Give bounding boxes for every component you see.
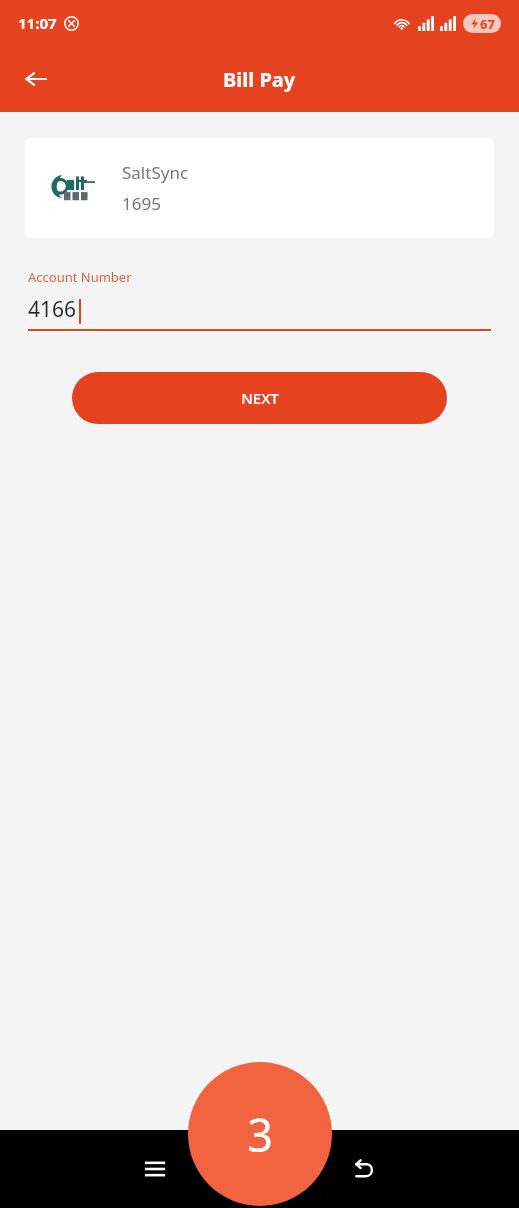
staticText: 4166 — [28, 295, 77, 324]
button[interactable]: Back — [311, 1130, 415, 1208]
button[interactable]: 4166 — [28, 295, 491, 324]
button[interactable]: Back — [12, 55, 60, 103]
button[interactable]: SaltSync — [25, 138, 494, 238]
button[interactable]: NEXT — [72, 372, 447, 424]
staticText: SaltSync — [122, 161, 189, 184]
staticText: 1695 — [122, 192, 161, 215]
staticText: 3 — [247, 1104, 273, 1165]
button[interactable]: Recents — [103, 1130, 207, 1208]
staticText: Account Number — [28, 268, 132, 286]
staticText: 67 — [480, 15, 495, 33]
staticText: NEXT — [241, 388, 279, 408]
staticText: Bill Pay — [223, 66, 296, 93]
button[interactable]: 3 — [188, 1062, 332, 1206]
staticText: 11:07 — [18, 13, 57, 33]
